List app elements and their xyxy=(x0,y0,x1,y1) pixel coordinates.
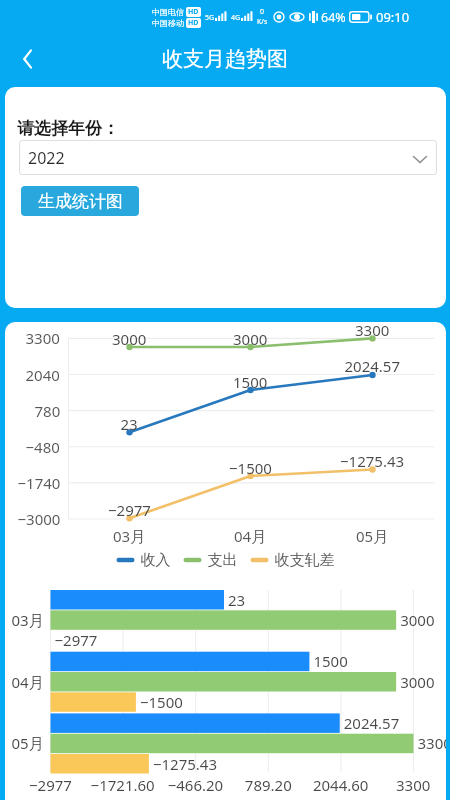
staticText: HD xyxy=(188,18,199,28)
staticText: 4G xyxy=(231,13,241,23)
staticText: HD xyxy=(188,7,199,17)
button[interactable]: 2022 xyxy=(19,140,437,175)
staticText: 09:10 xyxy=(376,8,410,26)
button[interactable]: 生成统计图 xyxy=(21,186,139,216)
staticText: 64% xyxy=(321,9,346,26)
staticText: 5G xyxy=(205,13,215,23)
staticText: 中国移动 xyxy=(152,18,184,28)
staticText: 2022 xyxy=(28,147,65,169)
staticText: 请选择年份： xyxy=(17,118,119,139)
staticText: 中国电信 xyxy=(152,7,184,17)
staticText: K/s xyxy=(257,17,268,27)
staticText: 收支月趋势图 xyxy=(162,46,288,72)
staticText: 0 xyxy=(260,7,265,17)
button[interactable]: Back xyxy=(4,38,46,80)
staticText: 生成统计图 xyxy=(38,191,123,212)
